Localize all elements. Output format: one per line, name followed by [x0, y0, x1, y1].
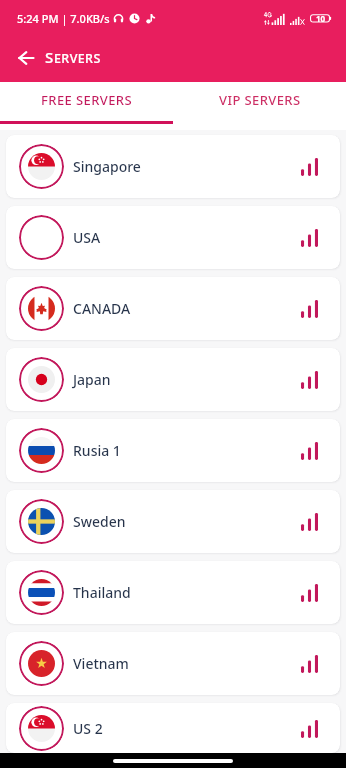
button[interactable]: USA: [6, 206, 340, 269]
staticText: FREE SERVERS: [41, 91, 132, 109]
staticText: 10: [316, 13, 326, 24]
staticText: S: [45, 47, 54, 67]
button[interactable]: CANADA: [6, 277, 340, 340]
button[interactable]: FREE SERVERS: [0, 91, 173, 109]
button[interactable]: Japan: [6, 348, 340, 411]
staticText: 5:24 PM | 7.0KB/s: [17, 11, 110, 26]
button[interactable]: Rusia 1: [6, 419, 340, 482]
staticText: Sweden: [73, 512, 126, 531]
staticText: US 2: [73, 719, 103, 738]
button[interactable]: VIP SERVERS: [173, 91, 346, 109]
button[interactable]: Vietnam: [6, 632, 340, 695]
staticText: Rusia 1: [73, 441, 121, 460]
staticText: Singapore: [73, 157, 141, 176]
button[interactable]: Back: [8, 40, 44, 76]
staticText: Thailand: [73, 583, 131, 602]
staticText: VIP SERVERS: [219, 91, 301, 109]
button[interactable]: US 2: [6, 703, 340, 753]
staticText: ERVERS: [54, 50, 101, 67]
button[interactable]: Singapore: [6, 135, 340, 198]
staticText: Japan: [73, 370, 111, 389]
staticText: USA: [73, 228, 101, 247]
button[interactable]: Sweden: [6, 490, 340, 553]
staticText: Vietnam: [73, 654, 129, 673]
staticText: CANADA: [73, 299, 131, 318]
button[interactable]: Thailand: [6, 561, 340, 624]
